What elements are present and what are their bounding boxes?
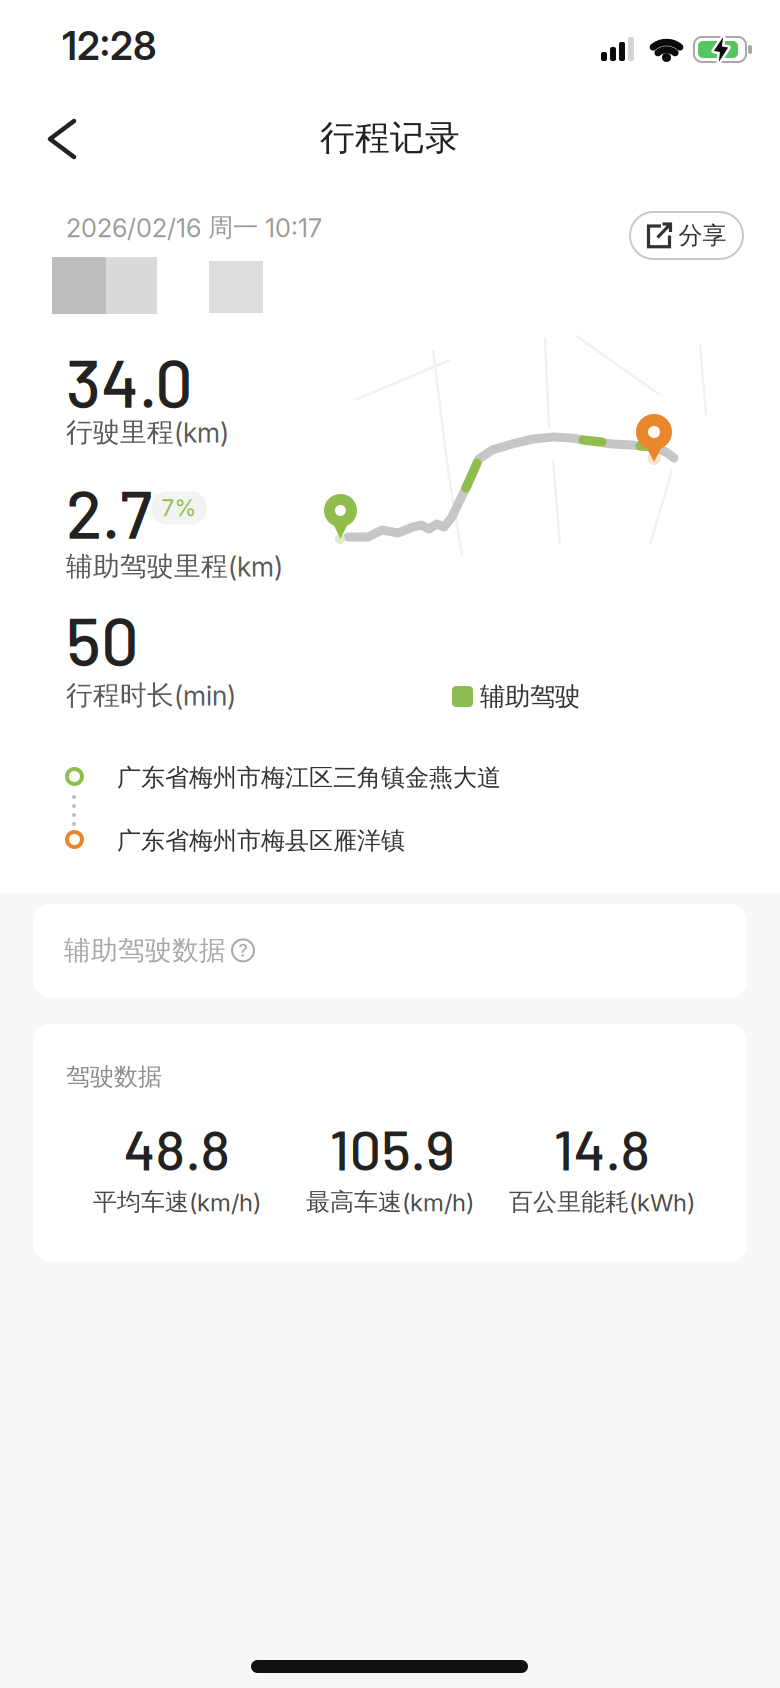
staticText: 2026/02/16 周一 10:17 [66,212,322,243]
staticText: 行程记录 [320,117,460,159]
staticText: 分享 [678,221,726,250]
staticText: 广东省梅州市梅县区雁洋镇 [117,826,405,855]
staticText: ? [238,940,247,961]
staticText: 12:28 [62,23,157,69]
staticText: 50 [66,599,139,679]
staticText: 行驶里程(km) [66,416,229,449]
staticText: 辅助驾驶 [480,681,580,712]
staticText: 2.7 [66,472,152,552]
staticText: 百公里能耗(kWh) [509,1187,695,1217]
staticText: 最高车速(km/h) [306,1187,474,1217]
staticText: 辅助驾驶里程(km) [66,550,283,583]
staticText: 辅助驾驶数据 [64,934,226,967]
button[interactable]: 辅助驾驶数据 [33,904,747,998]
button[interactable]: 返回 [38,109,86,169]
staticText: 105.9 [329,1114,454,1182]
staticText: 48.8 [123,1114,230,1182]
staticText: 行程时长(min) [66,679,236,712]
staticText: 平均车速(km/h) [93,1187,261,1217]
staticText: 7% [161,495,196,521]
staticText: 广东省梅州市梅江区三角镇金燕大道 [117,763,501,792]
staticText: 34.0 [66,341,193,421]
staticText: 驾驶数据 [66,1062,162,1091]
staticText: 14.8 [553,1114,650,1182]
button[interactable]: 分享 [630,212,743,259]
